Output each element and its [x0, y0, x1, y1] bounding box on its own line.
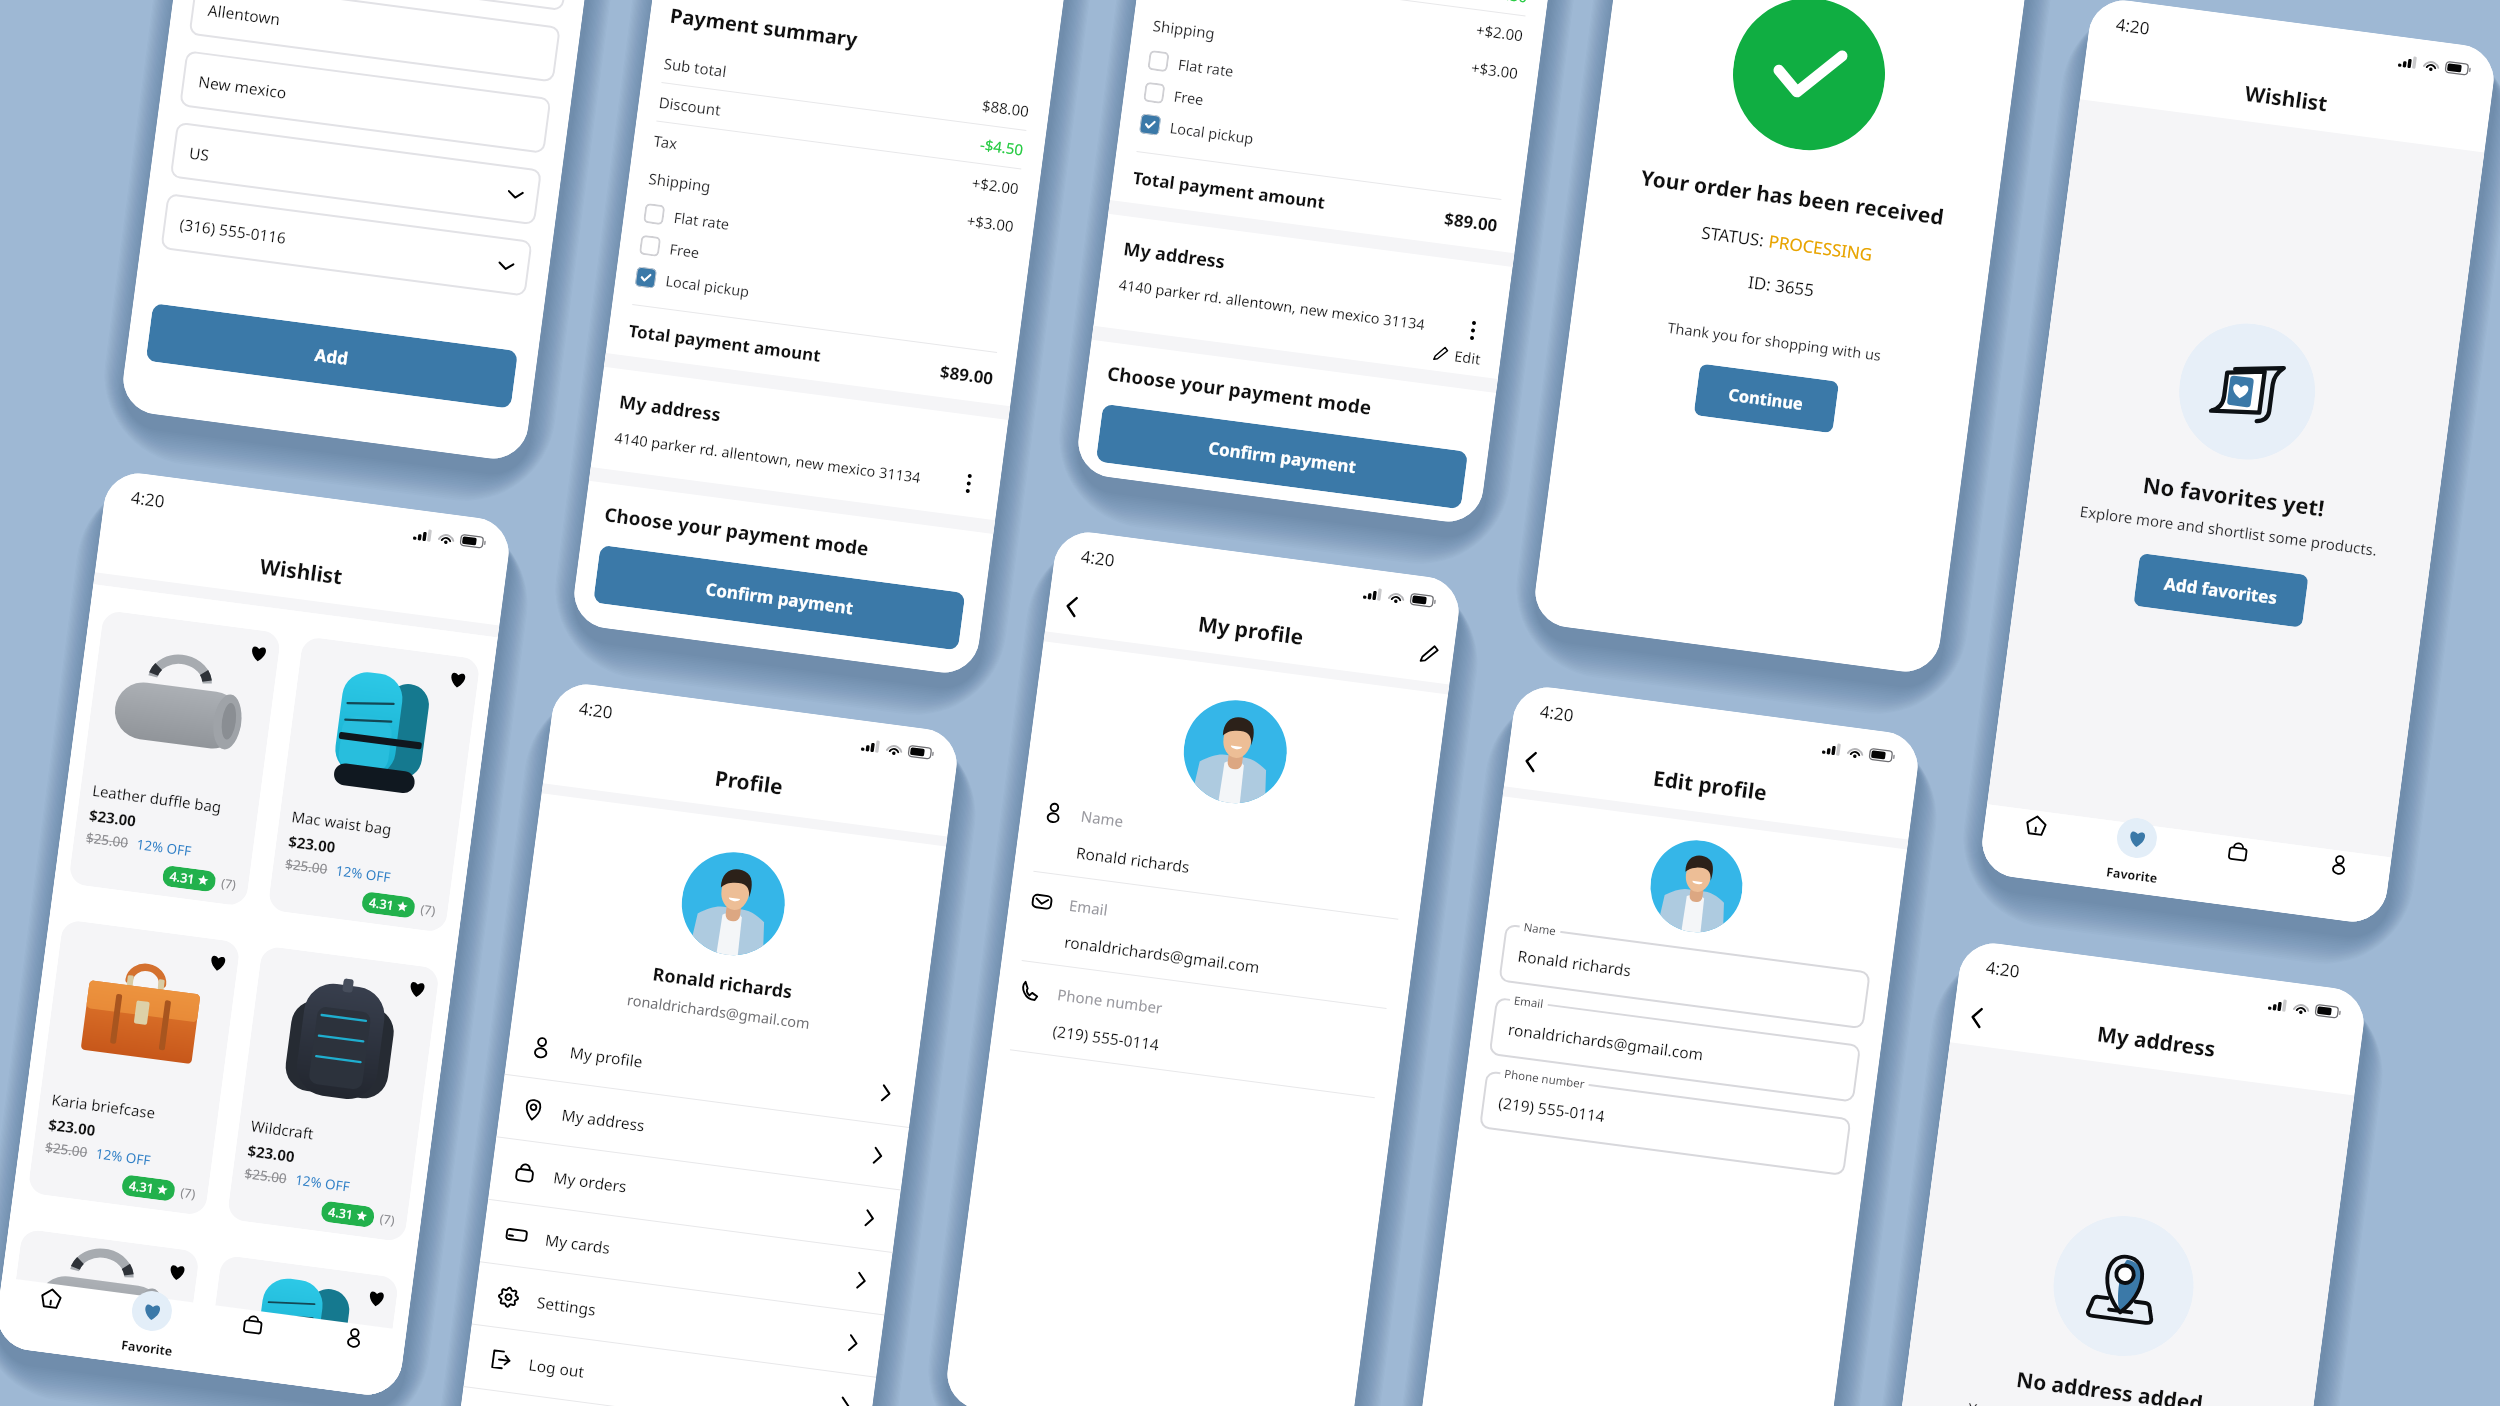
staticText: Thank you for shopping with us: [1666, 317, 1882, 365]
button[interactable]: (219) 555-0114: [1479, 1070, 1851, 1176]
button[interactable]: My orders: [488, 1137, 901, 1252]
staticText: +$3.00: [966, 210, 1015, 236]
button[interactable]: My cards: [480, 1200, 892, 1314]
button[interactable]: Edit: [1431, 342, 1482, 369]
button[interactable]: More options: [956, 471, 981, 496]
staticText: 12% OFF: [335, 861, 392, 886]
staticText: 4:20: [1079, 544, 1116, 572]
staticText: New mexico: [197, 70, 288, 103]
staticText: 12% OFF: [136, 835, 192, 860]
staticText: Log out: [528, 1353, 586, 1382]
button[interactable]: Karia briefcase: [27, 919, 241, 1216]
staticText: Sub total: [663, 53, 728, 81]
staticText: You can add address for easy checkout.: [1967, 1398, 2244, 1406]
staticText: (316) 555-0116: [178, 213, 287, 248]
button[interactable]: (316) 555-0116: [160, 193, 533, 297]
button[interactable]: My address: [496, 1075, 909, 1189]
staticText: ronaldrichards@gmail.com: [1063, 931, 1261, 977]
button[interactable]: Edit: [1402, 627, 1456, 681]
staticText: 4:20: [1538, 699, 1575, 727]
button[interactable]: Flat rate: [1147, 50, 1515, 118]
staticText: $25.00: [284, 855, 329, 878]
staticText: My address: [560, 1104, 646, 1135]
button[interactable]: Mac waist bag: [267, 636, 481, 933]
staticText: 4.31: [327, 1203, 354, 1223]
staticText: Your order has been received: [1639, 163, 1946, 232]
button[interactable]: US: [170, 122, 542, 225]
staticText: My profile: [1196, 609, 1305, 652]
staticText: Shipping: [1152, 15, 1217, 43]
staticText: Confirm payment: [1207, 436, 1358, 478]
staticText: Leather duffle bag: [91, 780, 223, 817]
staticText: Wishlist: [2243, 79, 2329, 118]
button[interactable]: Leather duffle bag: [68, 610, 281, 907]
staticText: Local pickup: [664, 270, 751, 301]
staticText: 4:20: [2114, 12, 2151, 40]
staticText: Choose your payment mode: [603, 501, 871, 562]
button[interactable]: Leather duffle bag: [7, 1228, 200, 1371]
staticText: Email: [1068, 895, 1109, 920]
staticText: 4140 parker rd. allentown, new mexico 31…: [613, 427, 959, 492]
staticText: $88.00: [981, 95, 1030, 121]
button[interactable]: Orders: [2185, 825, 2291, 878]
button[interactable]: Confirm payment: [593, 545, 965, 650]
staticText: Ronald richards: [1517, 945, 1633, 980]
button[interactable]: Delete account: [455, 1387, 868, 1406]
staticText: -$4.50: [979, 134, 1025, 160]
button[interactable]: Back: [1045, 580, 1099, 634]
button[interactable]: Log out: [463, 1325, 876, 1406]
button[interactable]: ronaldrichards@gmail.com: [1489, 997, 1861, 1103]
staticText: Flat rate: [1177, 54, 1235, 81]
staticText: (7): [379, 1210, 396, 1229]
button[interactable]: Profile: [301, 1311, 407, 1364]
staticText: Allentown: [207, 0, 282, 29]
staticText: $23.00: [287, 831, 337, 857]
staticText: Add: [313, 343, 350, 370]
button[interactable]: Confirm payment: [1096, 404, 1468, 509]
button[interactable]: Orders: [200, 1298, 306, 1351]
button[interactable]: Favorite: [95, 1284, 205, 1363]
staticText: Edit profile: [1651, 764, 1769, 808]
staticText: $23.00: [246, 1140, 297, 1166]
staticText: +$2.00: [1475, 19, 1524, 45]
staticText: PROCESSING: [1767, 229, 1874, 266]
button[interactable]: Favorite: [2080, 811, 2190, 890]
button[interactable]: Allentown: [189, 0, 561, 82]
button[interactable]: More options: [1461, 318, 1485, 343]
button[interactable]: Flat rate: [643, 203, 1010, 271]
staticText: (7): [420, 901, 437, 919]
staticText: Free: [1173, 85, 1205, 109]
button[interactable]: Free: [639, 235, 1006, 302]
button[interactable]: 4140 parker rd: [198, 0, 570, 11]
button[interactable]: Settings: [472, 1262, 884, 1377]
button[interactable]: Local pickup: [1139, 113, 1506, 181]
staticText: ronaldrichards@gmail.com: [1507, 1018, 1705, 1064]
button[interactable]: New mexico: [179, 50, 551, 154]
staticText: Ronald richards: [1075, 841, 1192, 877]
button[interactable]: Continue: [1693, 363, 1839, 433]
button[interactable]: Add favorites: [2133, 553, 2309, 628]
button[interactable]: Add: [146, 303, 518, 409]
button[interactable]: Mac waist bag: [206, 1255, 399, 1397]
staticText: My address: [1122, 236, 1226, 274]
button[interactable]: Profile: [2286, 838, 2392, 891]
button[interactable]: Wildcraft: [227, 945, 440, 1242]
staticText: 4140 parker rd. allentown, new mexico 31…: [1118, 274, 1463, 339]
staticText: Edit: [1453, 345, 1482, 368]
staticText: Total payment amount: [1132, 166, 1327, 214]
button[interactable]: Back: [1950, 991, 2004, 1045]
button[interactable]: Ronald richards: [1498, 924, 1871, 1029]
staticText: Explore more and shortlist some products…: [2079, 501, 2379, 560]
button[interactable]: My profile: [505, 1012, 917, 1127]
staticText: 12% OFF: [95, 1144, 152, 1169]
staticText: (219) 555-0114: [1497, 1091, 1606, 1126]
staticText: Choose your payment mode: [1106, 360, 1374, 421]
button[interactable]: Free: [1143, 82, 1511, 149]
button[interactable]: Home: [1983, 798, 2089, 851]
staticText: Profile: [713, 764, 785, 802]
button[interactable]: Local pickup: [635, 266, 1002, 334]
staticText: Ronald richards: [651, 961, 794, 1005]
button[interactable]: Back: [1504, 735, 1558, 789]
staticText: Email: [1513, 992, 1545, 1012]
button[interactable]: Home: [0, 1271, 104, 1324]
